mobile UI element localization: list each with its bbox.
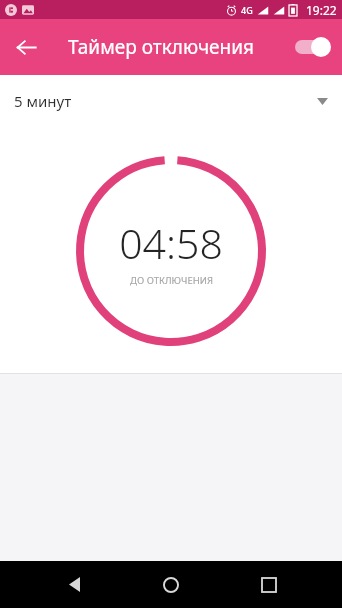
staticText: Таймер отключения xyxy=(68,34,254,60)
staticText: 5 минут xyxy=(14,91,72,111)
button[interactable]: Recent apps xyxy=(245,561,293,608)
staticText: ДО ОТКЛЮЧЕНИЯ xyxy=(130,274,213,287)
staticText: 19:22 xyxy=(306,2,337,18)
button[interactable]: 5 минут xyxy=(0,75,342,127)
staticText: 4G xyxy=(241,4,253,16)
staticText: 04:58 xyxy=(119,215,223,271)
button[interactable]: Home xyxy=(147,561,195,608)
button[interactable]: Back xyxy=(50,561,98,608)
button[interactable]: Toggle timer xyxy=(288,27,336,67)
button[interactable]: Back xyxy=(4,25,48,69)
